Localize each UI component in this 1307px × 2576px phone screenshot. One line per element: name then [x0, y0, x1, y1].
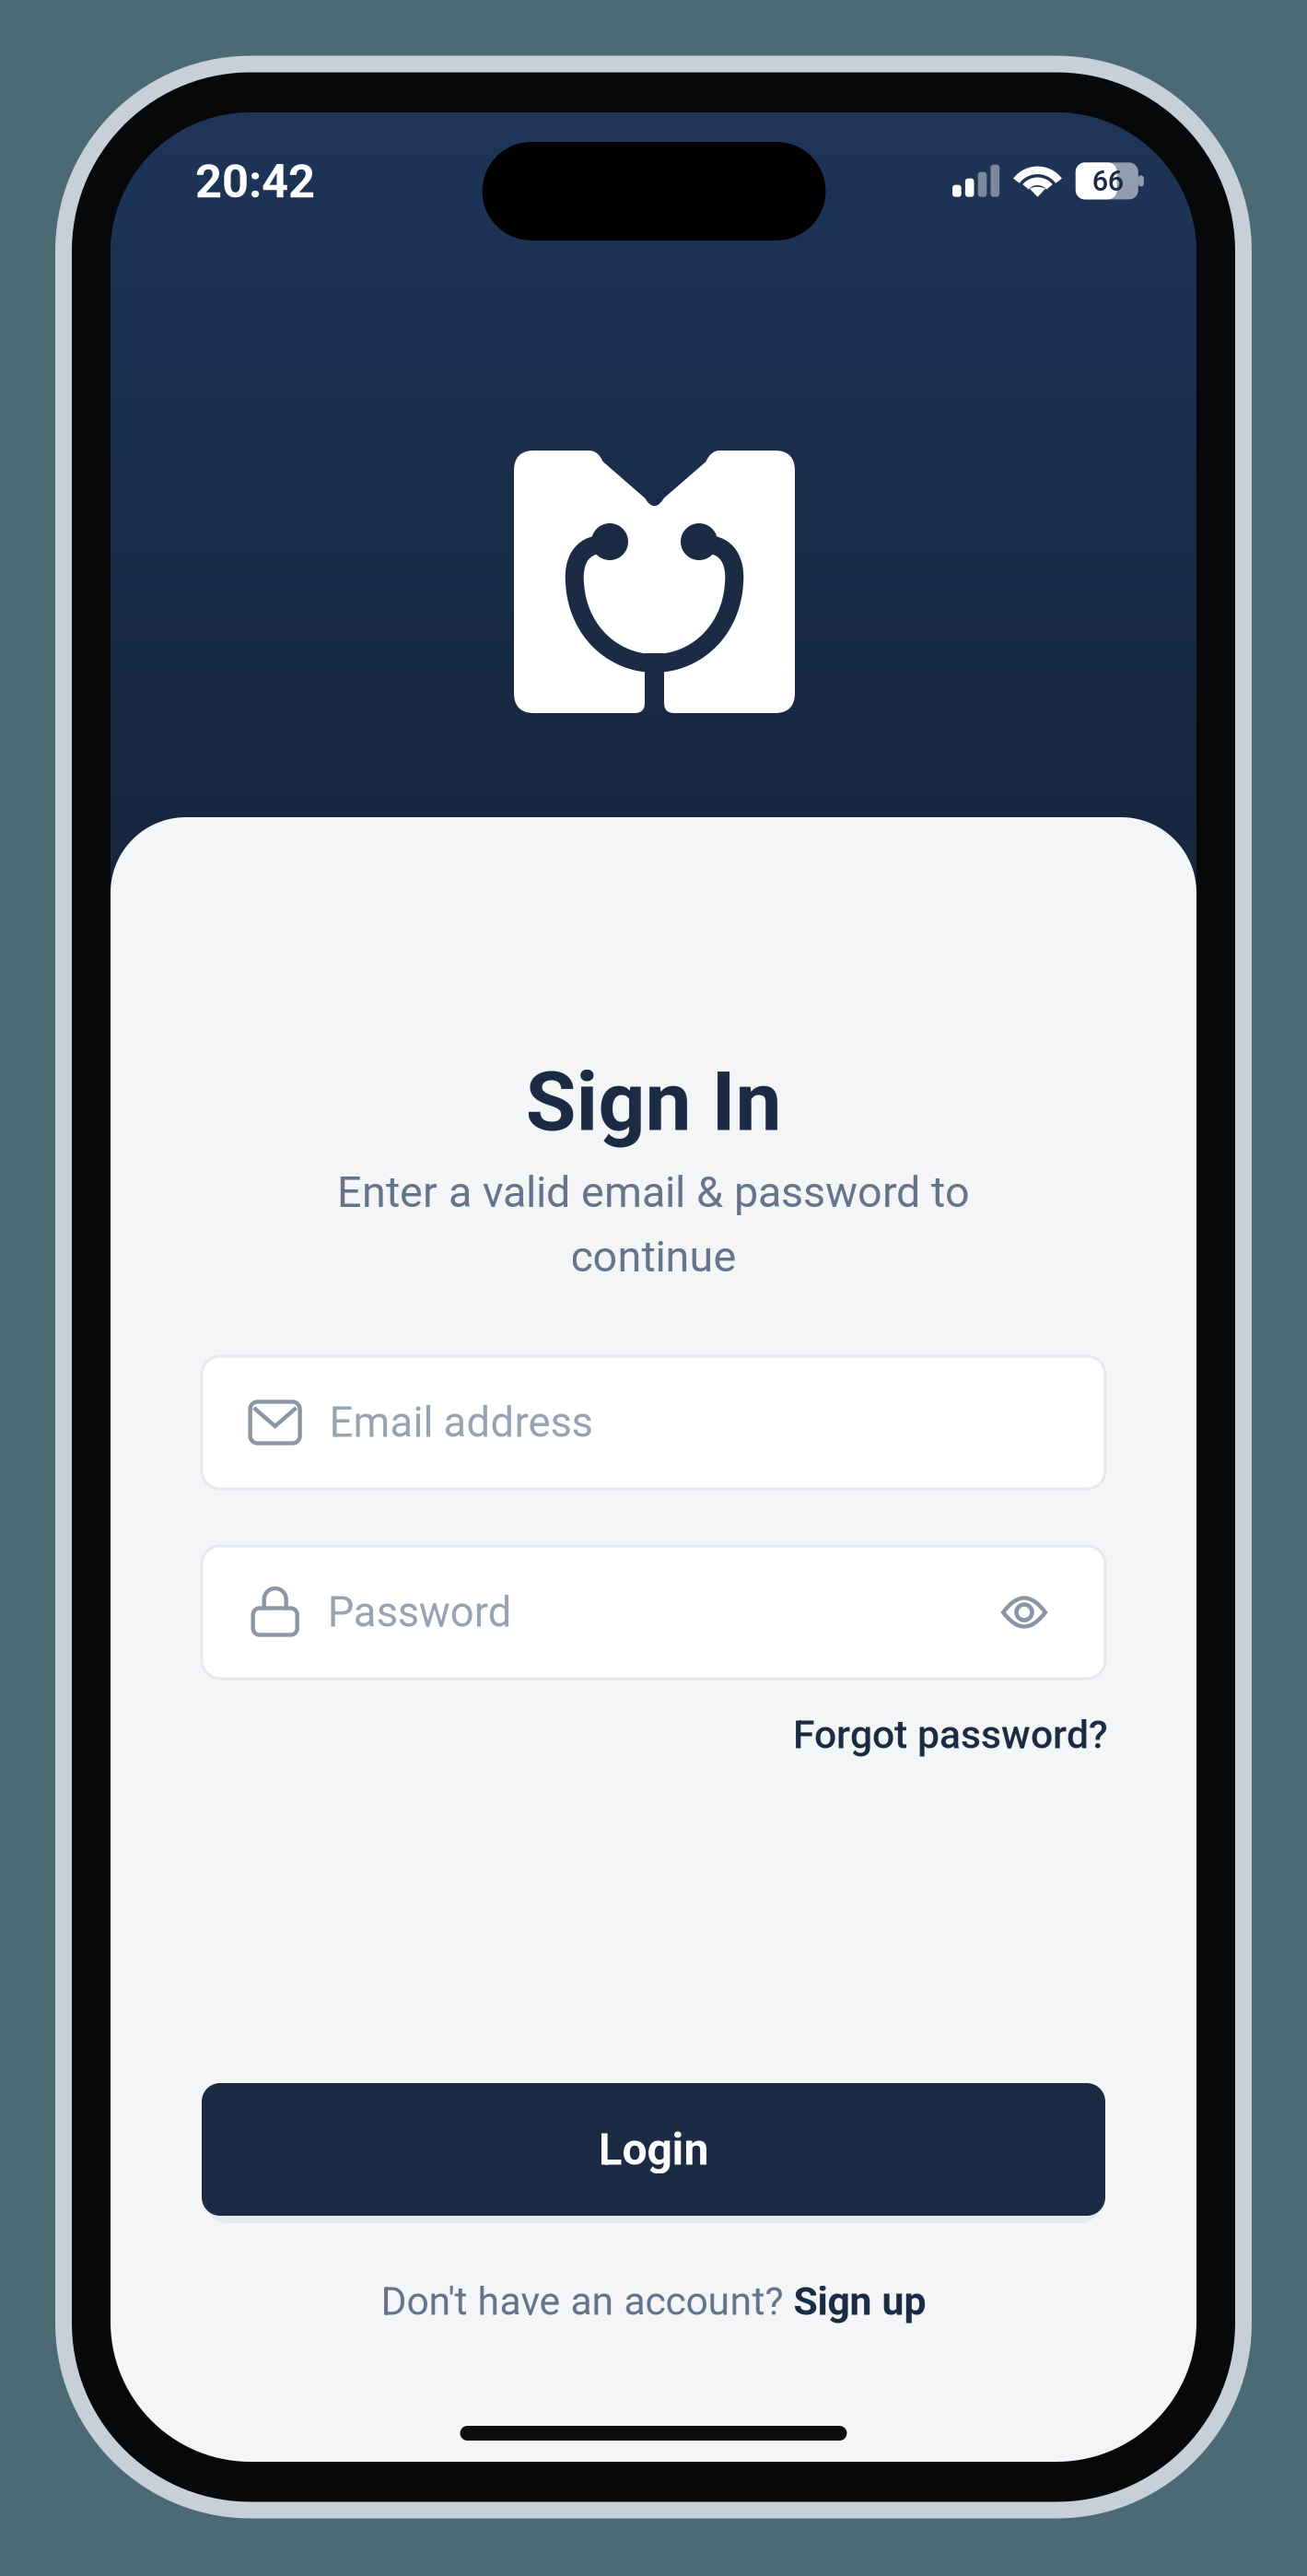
button[interactable]: Don't have an account? [381, 2278, 926, 2324]
staticText: Don't have an account? [381, 2278, 794, 2324]
staticText: Email address [329, 1398, 593, 1447]
staticText: Sign up [794, 2278, 926, 2324]
staticText: continue [571, 1232, 736, 1282]
staticText: Enter a valid email & password to [337, 1167, 970, 1217]
staticText: 20:42 [195, 154, 315, 209]
staticText: Forgot password? [793, 1712, 1108, 1758]
button[interactable]: Show password [1001, 1596, 1047, 1629]
staticText: 66 [1092, 164, 1124, 197]
staticText: Password [328, 1588, 512, 1637]
button[interactable]: Forgot password? [793, 1712, 1108, 1758]
staticText: Sign In [525, 1054, 782, 1150]
staticText: Login [598, 2124, 709, 2175]
button[interactable]: Login [202, 2083, 1105, 2216]
